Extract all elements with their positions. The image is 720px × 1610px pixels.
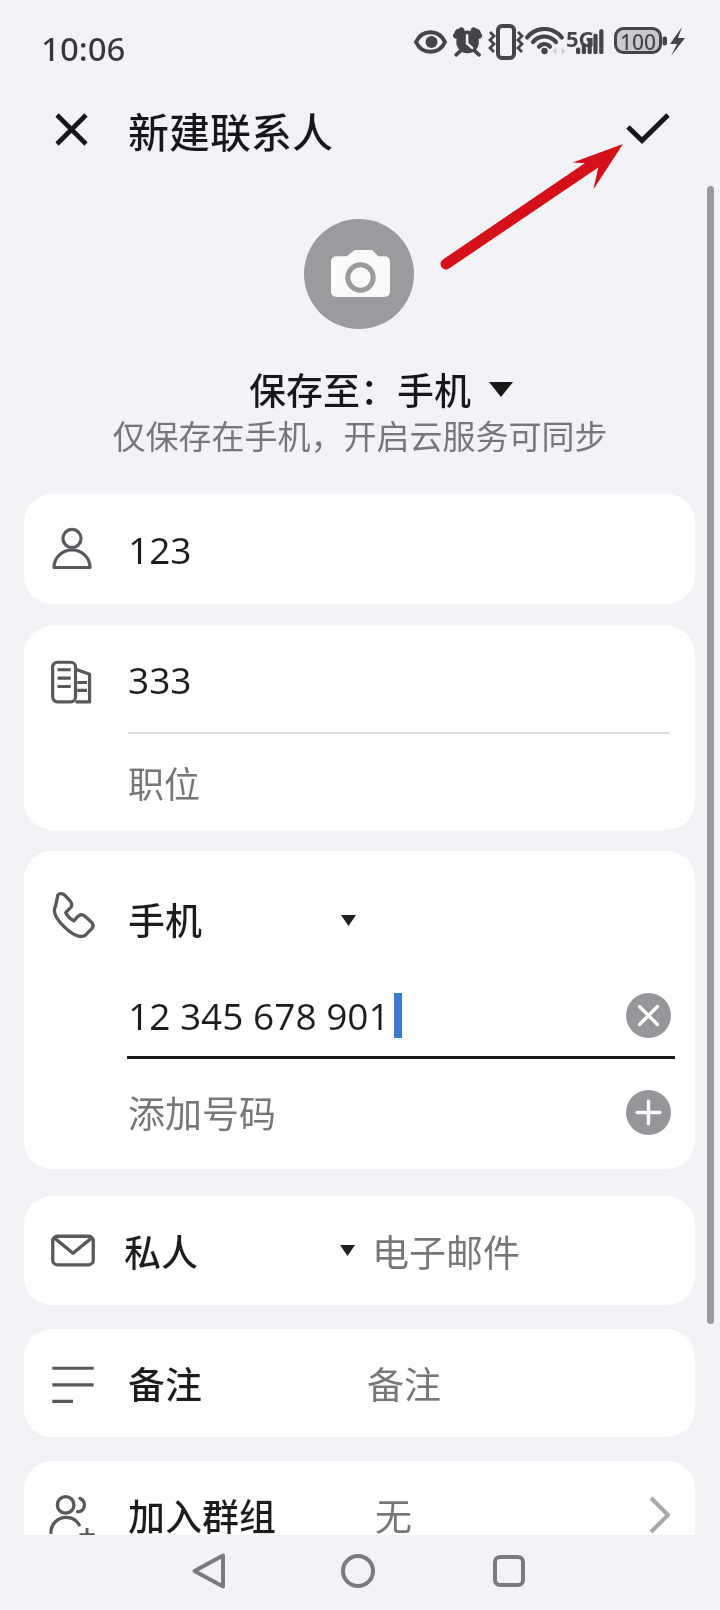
button[interactable]: Home [322,1535,394,1607]
staticText: 仅保存在手机，开启云服务可同步 [0,411,720,459]
button[interactable]: 123 [24,494,695,604]
button[interactable]: Back [172,1535,244,1607]
button[interactable]: 私人 [24,1196,695,1305]
staticText: 无 [375,1488,412,1542]
staticText: 加入群组 [128,1488,276,1542]
button[interactable]: 手机 [24,851,695,986]
button[interactable]: 加入群组 [24,1461,695,1569]
button[interactable]: 备注 [24,1329,695,1437]
staticText: 12 345 678 901 [128,990,390,1040]
button[interactable]: Close [41,99,102,160]
staticText: 100 [620,28,657,53]
staticText: 333 [128,654,192,704]
button[interactable]: 添加号码 [24,1075,695,1149]
staticText: 保存至：手机 [249,362,471,416]
staticText: 手机 [128,892,202,946]
button[interactable]: Add photo [304,219,414,329]
button[interactable]: Clear number [626,993,671,1038]
button[interactable]: Save contact [618,100,678,160]
staticText: 123 [128,524,192,574]
button[interactable]: 保存至：手机 [249,362,513,416]
staticText: 电子邮件 [372,1224,520,1278]
button[interactable]: 333 [24,626,695,732]
staticText: 职位 [128,756,201,808]
staticText: 5G [566,23,595,53]
staticText: 备注 [128,1356,202,1410]
staticText: 添加号码 [128,1085,276,1139]
button[interactable]: 职位 [24,734,695,830]
button[interactable]: Add number [626,1090,671,1135]
staticText: 10:06 [41,26,126,71]
staticText: 备注 [367,1356,441,1410]
staticText: 新建联系人 [128,100,333,159]
button[interactable]: Recent apps [473,1535,545,1607]
staticText: 私人 [124,1224,198,1278]
